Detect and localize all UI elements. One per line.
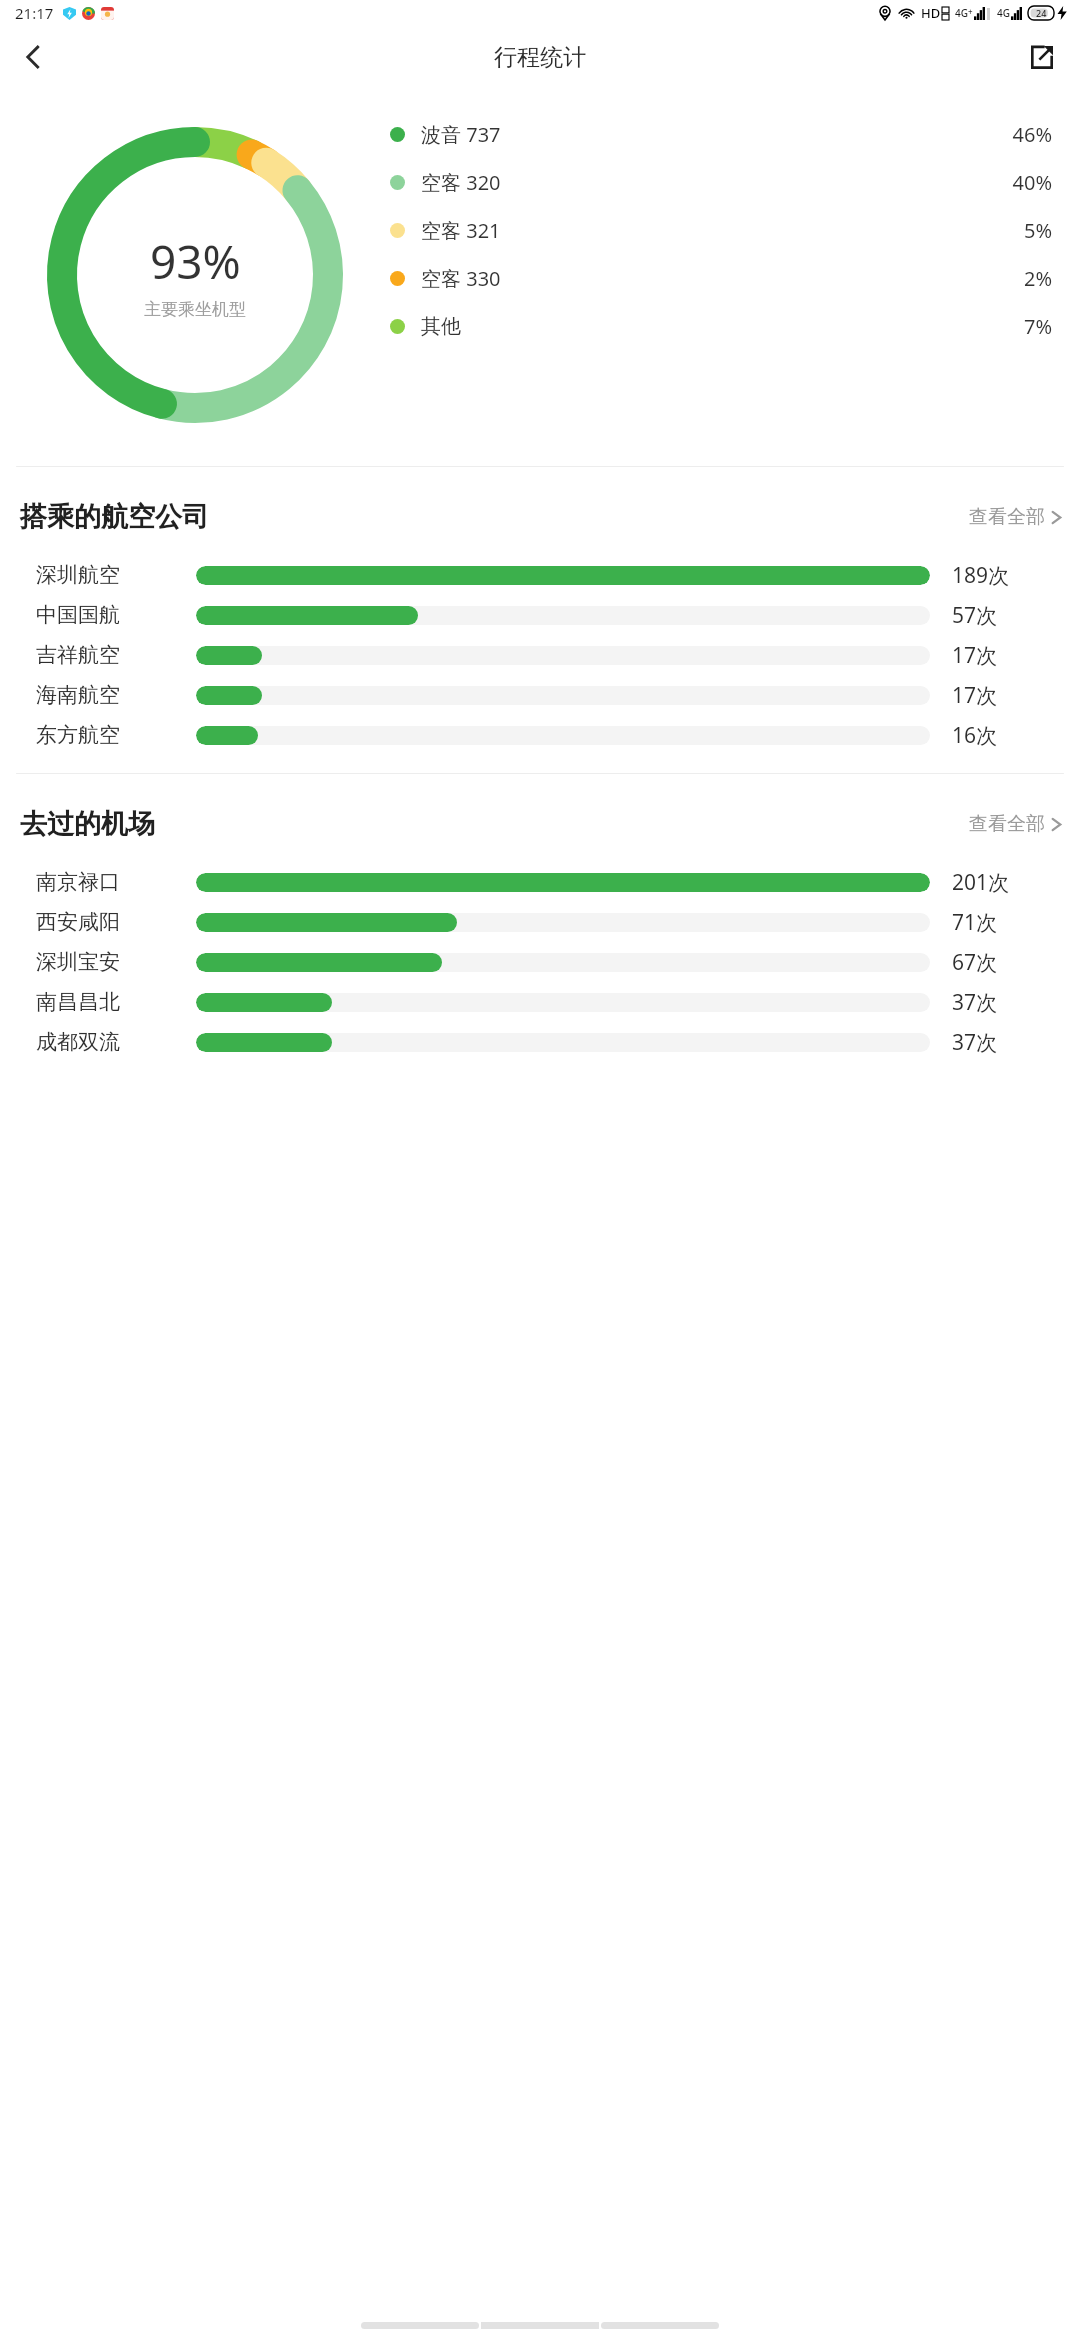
staticText: 16次	[952, 721, 998, 750]
staticText: 4G	[955, 6, 968, 20]
staticText: 7%	[1023, 313, 1052, 340]
button[interactable]: 南京禄口	[0, 862, 1080, 902]
staticText: 海南航空	[36, 682, 120, 708]
button[interactable]: 查看全部	[969, 812, 1062, 836]
staticText: 40%	[1012, 169, 1052, 196]
staticText: 67次	[952, 948, 998, 977]
button[interactable]: Share	[1016, 31, 1068, 83]
staticText: 查看全部	[969, 505, 1045, 529]
button[interactable]: 吉祥航空	[0, 635, 1080, 675]
staticText: 空客 321	[421, 217, 501, 244]
staticText: 空客 330	[421, 265, 501, 292]
button[interactable]: 其他	[390, 312, 1052, 340]
staticText: 南昌昌北	[36, 989, 120, 1015]
staticText: 57次	[952, 601, 998, 630]
staticText: HD	[921, 4, 941, 22]
button[interactable]: 空客 320	[390, 168, 1052, 196]
staticText: 71次	[952, 908, 998, 937]
staticText: 4G	[997, 6, 1010, 20]
button[interactable]: 空客 330	[390, 264, 1052, 292]
staticText: 搭乘的航空公司	[20, 500, 209, 534]
staticText: 西安咸阳	[36, 909, 120, 935]
staticText: 37次	[952, 988, 998, 1017]
button[interactable]: 空客 321	[390, 216, 1052, 244]
button[interactable]: 成都双流	[0, 1022, 1080, 1062]
button[interactable]: 深圳宝安	[0, 942, 1080, 982]
other: Location	[878, 6, 892, 20]
staticText: 深圳宝安	[36, 949, 120, 975]
button[interactable]: 海南航空	[0, 675, 1080, 715]
staticText: 37次	[952, 1028, 998, 1057]
staticText: 中国国航	[36, 602, 120, 628]
staticText: 其他	[421, 314, 461, 339]
staticText: 17次	[952, 641, 998, 670]
staticText: 24	[1036, 7, 1047, 19]
staticText: 189次	[952, 561, 1010, 590]
button[interactable]: 波音 737	[390, 120, 1052, 148]
staticText: 去过的机场	[20, 807, 155, 841]
button[interactable]: 深圳航空	[0, 555, 1080, 595]
staticText: 空客 320	[421, 169, 501, 196]
button[interactable]: 查看全部	[969, 505, 1062, 529]
staticText: 46%	[1012, 121, 1052, 148]
staticText: 深圳航空	[36, 562, 120, 588]
button[interactable]: 南昌昌北	[0, 982, 1080, 1022]
staticText: 201次	[952, 868, 1010, 897]
staticText: 成都双流	[36, 1029, 120, 1055]
staticText: 2%	[1023, 265, 1052, 292]
staticText: 波音 737	[421, 121, 501, 148]
button[interactable]: 东方航空	[0, 715, 1080, 755]
button[interactable]: Back	[6, 30, 60, 84]
button[interactable]: 西安咸阳	[0, 902, 1080, 942]
staticText: 21:17	[15, 3, 54, 23]
staticText: 东方航空	[36, 722, 120, 748]
staticText: +	[968, 6, 973, 17]
staticText: 93%	[150, 230, 241, 293]
staticText: 南京禄口	[36, 869, 120, 895]
button[interactable]: 中国国航	[0, 595, 1080, 635]
staticText: 行程统计	[494, 43, 586, 72]
staticText: 17次	[952, 681, 998, 710]
staticText: 主要乘坐机型	[144, 299, 246, 320]
staticText: 吉祥航空	[36, 642, 120, 668]
staticText: 查看全部	[969, 812, 1045, 836]
staticText: 5%	[1023, 217, 1052, 244]
